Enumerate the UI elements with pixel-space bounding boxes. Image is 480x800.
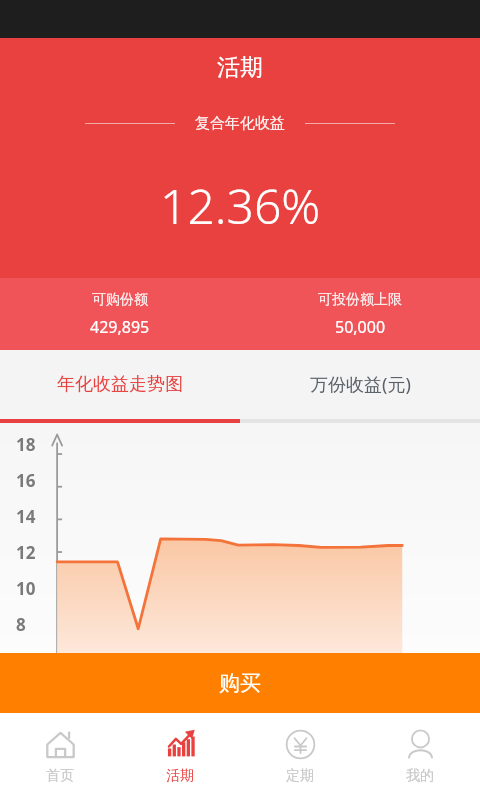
button[interactable]: 可投份额上限: [240, 278, 480, 350]
staticText: 12.36%: [160, 173, 321, 238]
staticText: 购买: [219, 670, 261, 696]
staticText: 50,000: [335, 316, 386, 338]
staticText: 定期: [286, 767, 314, 785]
button[interactable]: 活期: [120, 713, 240, 800]
button[interactable]: 我的: [360, 713, 480, 800]
staticText: 18: [16, 433, 36, 456]
staticText: 活期: [166, 767, 194, 785]
button[interactable]: 年化收益走势图: [0, 350, 240, 419]
button[interactable]: 购买: [0, 653, 480, 713]
button[interactable]: 首页: [0, 713, 120, 800]
staticText: 429,895: [90, 316, 150, 338]
button[interactable]: 定期: [240, 713, 360, 800]
button[interactable]: 可购份额: [0, 278, 240, 350]
staticText: 年化收益走势图: [57, 373, 183, 396]
staticText: 活期: [217, 53, 263, 82]
staticText: 万份收益(元): [310, 372, 411, 397]
staticText: 12: [16, 541, 36, 564]
staticText: 可投份额上限: [318, 291, 402, 309]
staticText: 我的: [406, 767, 434, 785]
staticText: 14: [16, 505, 36, 528]
staticText: 10: [16, 577, 36, 600]
staticText: 可购份额: [92, 291, 148, 309]
staticText: 首页: [46, 767, 74, 785]
button[interactable]: 万份收益(元): [240, 350, 480, 419]
staticText: 8: [16, 613, 26, 636]
staticText: 复合年化收益: [195, 114, 285, 133]
staticText: 16: [16, 469, 36, 492]
